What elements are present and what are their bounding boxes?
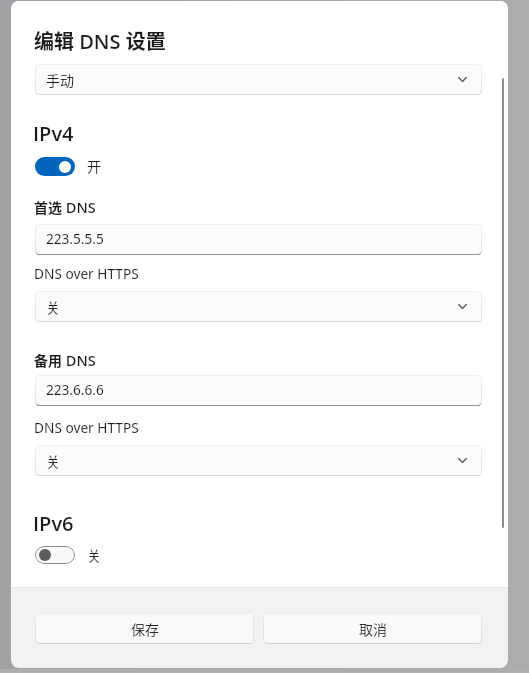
staticText: DNS over HTTPS	[34, 417, 139, 437]
staticText: 首选 DNS	[34, 197, 96, 217]
button[interactable]: Switch on	[35, 157, 75, 176]
staticText: 备用 DNS	[34, 350, 96, 370]
button[interactable]: 取消	[263, 613, 482, 644]
staticText: 手动	[46, 70, 74, 90]
button[interactable]: 223.5.5.5	[35, 224, 482, 255]
staticText: 保存	[131, 619, 159, 639]
staticText: 223.5.5.5	[46, 228, 104, 248]
staticText: 编辑 DNS 设置	[34, 26, 166, 55]
staticText: DNS over HTTPS	[34, 263, 139, 283]
button[interactable]: 关	[35, 291, 482, 322]
staticText: 关	[46, 297, 60, 317]
button[interactable]: 关	[35, 445, 482, 476]
button[interactable]: Switch off	[35, 546, 75, 564]
staticText: 关	[46, 451, 60, 471]
button[interactable]: 223.6.6.6	[35, 375, 482, 406]
staticText: 223.6.6.6	[46, 379, 104, 399]
staticText: 开	[87, 156, 101, 176]
staticText: IPv4	[33, 120, 74, 147]
staticText: 取消	[359, 619, 387, 639]
staticText: 关	[87, 545, 101, 565]
staticText: IPv6	[33, 510, 74, 537]
button[interactable]: 手动	[35, 64, 482, 95]
button[interactable]: 保存	[35, 613, 254, 644]
